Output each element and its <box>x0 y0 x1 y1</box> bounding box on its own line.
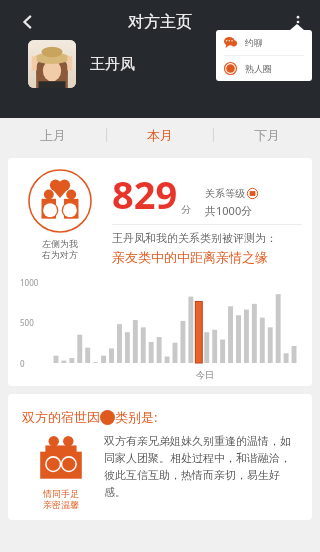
button[interactable]: 下月 <box>214 118 320 152</box>
staticText: 829 <box>112 168 178 220</box>
staticText: 熟人圈 <box>245 63 272 74</box>
staticText: 双方有亲兄弟姐妹久别重逢的温情，如同家人团聚。相处过程中，和谐融洽，彼此互信互助… <box>104 434 300 499</box>
staticText: 下月 <box>254 127 280 143</box>
staticText: 情同手足 <box>43 488 79 499</box>
staticText: 类别是: <box>115 408 158 426</box>
staticText: 本月 <box>147 127 173 143</box>
staticText: 右为对方 <box>42 249 78 260</box>
button[interactable]: 本月 <box>107 118 213 152</box>
staticText: 对方主页 <box>128 12 192 32</box>
button[interactable]: More options <box>276 0 320 44</box>
button[interactable]: 熟人圈 <box>216 56 312 81</box>
staticText: 0 <box>20 358 25 369</box>
staticText: 关系等级 <box>205 187 245 200</box>
staticText: 亲友类中的中距离亲情之缘 <box>112 249 268 265</box>
staticText: 王丹凤和我的关系类别被评测为： <box>112 231 277 245</box>
staticText: 共1000分 <box>205 203 253 218</box>
staticText: 亲密温馨 <box>43 499 79 510</box>
button[interactable]: 上月 <box>0 118 106 152</box>
button[interactable]: 双方的宿世因 <box>8 394 312 520</box>
button[interactable]: Avatar <box>28 40 76 88</box>
button[interactable]: Back <box>6 0 50 44</box>
staticText: 分 <box>181 203 191 216</box>
staticText: 左侧为我 <box>42 238 78 249</box>
staticText: 500 <box>20 317 34 328</box>
staticText: 1000 <box>20 277 39 288</box>
staticText: 双方的宿世因 <box>22 409 100 425</box>
button[interactable]: 左侧为我 <box>8 158 312 386</box>
staticText: 王丹凤 <box>90 55 135 74</box>
staticText: 上月 <box>40 127 66 143</box>
staticText: 今日 <box>196 369 214 380</box>
staticText: 约聊 <box>245 37 263 48</box>
button[interactable]: 约聊 <box>216 30 312 55</box>
